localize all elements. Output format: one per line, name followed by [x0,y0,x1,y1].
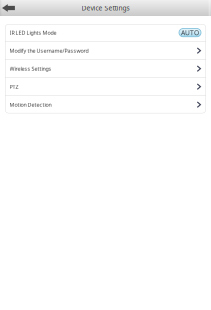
button[interactable]: PTZ [5,78,206,95]
staticText: Modify the Username/Password [9,47,88,54]
staticText: PTZ [9,83,18,90]
button[interactable]: Modify the Username/Password [5,42,206,59]
button[interactable]: Back [0,0,21,16]
staticText: AUTO [181,28,199,37]
button[interactable]: Wireless Settings [5,60,206,77]
staticText: IR LED Lights Mode [9,29,56,36]
button[interactable]: IR LED Lights Mode [5,24,206,41]
staticText: Motion Detection [9,101,51,108]
staticText: Wireless Settings [9,65,51,72]
staticText: Device Settings [81,4,129,12]
button[interactable]: Motion Detection [5,96,206,113]
